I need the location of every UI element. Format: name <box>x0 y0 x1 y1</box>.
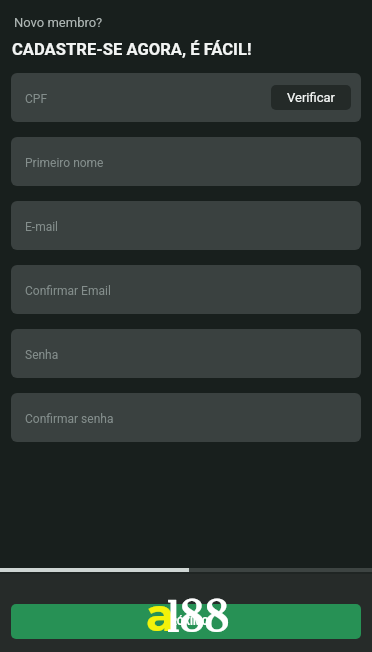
staticText: a <box>146 586 175 642</box>
button[interactable]: CPF <box>11 73 361 122</box>
staticText: Confirmar Email <box>25 284 111 298</box>
staticText: CADASTRE-SE AGORA, É FÁCIL! <box>12 40 252 59</box>
button[interactable]: Confirmar senha <box>11 393 361 442</box>
button[interactable]: PRÓXIMO <box>11 604 361 639</box>
button[interactable]: Senha <box>11 329 361 378</box>
button[interactable]: E-mail <box>11 201 361 250</box>
button[interactable]: Confirmar Email <box>11 265 361 314</box>
staticText: Verificar <box>287 90 335 105</box>
staticText: CPF <box>25 92 48 106</box>
staticText: Primeiro nome <box>25 156 104 170</box>
staticText: Confirmar senha <box>25 412 114 426</box>
staticText: E-mail <box>25 220 59 234</box>
button[interactable]: Verificar <box>271 85 351 110</box>
staticText: Novo membro? <box>14 15 103 30</box>
staticText: Senha <box>25 348 59 362</box>
staticText: PRÓXIMO <box>164 616 209 628</box>
button[interactable]: Primeiro nome <box>11 137 361 186</box>
staticText: 188 <box>166 594 229 645</box>
